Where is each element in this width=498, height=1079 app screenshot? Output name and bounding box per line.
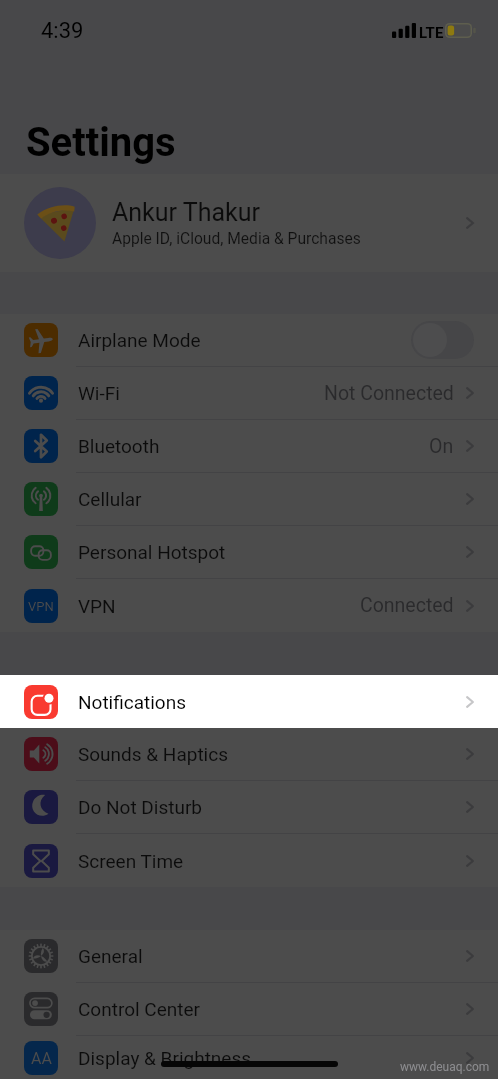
button[interactable]: Bluetooth — [0, 420, 498, 473]
other: Open — [466, 748, 474, 760]
button[interactable]: Ankur Thakur — [0, 174, 498, 272]
staticText: Personal Hotspot — [78, 541, 226, 563]
staticText: Not Connected — [324, 382, 454, 405]
staticText: Airplane Mode — [78, 329, 201, 351]
button[interactable]: VPN — [0, 579, 498, 632]
button[interactable]: Wi-Fi — [0, 367, 498, 420]
staticText: LTE — [419, 24, 444, 42]
staticText: Sounds & Haptics — [78, 743, 228, 765]
other: Open — [466, 1052, 474, 1064]
other: Open — [466, 546, 474, 558]
staticText: Settings — [26, 119, 176, 166]
staticText: Wi-Fi — [78, 382, 120, 404]
staticText: General — [78, 945, 143, 967]
staticText: VPN — [28, 599, 54, 614]
staticText: Bluetooth — [78, 435, 160, 457]
button[interactable]: Do Not Disturb — [0, 781, 498, 834]
staticText: Cellular — [78, 488, 142, 510]
staticText: Connected — [360, 594, 454, 617]
button[interactable]: Control Center — [0, 983, 498, 1036]
staticText: Screen Time — [78, 850, 184, 872]
other: Open — [466, 387, 474, 399]
other: Open — [466, 801, 474, 813]
other: Open — [466, 440, 474, 452]
button[interactable]: AA — [0, 1036, 498, 1079]
button[interactable]: Airplane Mode — [0, 314, 498, 367]
staticText: Apple ID, iCloud, Media & Purchases — [112, 230, 361, 248]
staticText: 4:39 — [41, 18, 84, 44]
staticText: Display & Brightness — [78, 1047, 252, 1069]
staticText: Notifications — [78, 691, 187, 713]
button[interactable]: Sounds & Haptics — [0, 728, 498, 781]
staticText: www.deuaq.com — [400, 1060, 490, 1074]
button[interactable]: Personal Hotspot — [0, 526, 498, 579]
other: Open — [466, 217, 474, 229]
staticText: Do Not Disturb — [78, 796, 203, 818]
staticText: On — [429, 435, 454, 458]
staticText: Ankur Thakur — [112, 198, 260, 227]
other: Open — [466, 1003, 474, 1015]
other: Open — [466, 696, 474, 708]
button[interactable]: Airplane Mode — [411, 321, 474, 359]
other: Open — [466, 600, 474, 612]
button[interactable]: Notifications — [0, 675, 498, 728]
other: Open — [466, 950, 474, 962]
other: Open — [466, 493, 474, 505]
staticText: Control Center — [78, 998, 200, 1020]
button[interactable]: Screen Time — [0, 834, 498, 887]
other: Open — [466, 855, 474, 867]
staticText: AA — [31, 1049, 52, 1068]
staticText: VPN — [78, 595, 116, 617]
button[interactable]: Cellular — [0, 473, 498, 526]
button[interactable]: General — [0, 930, 498, 983]
